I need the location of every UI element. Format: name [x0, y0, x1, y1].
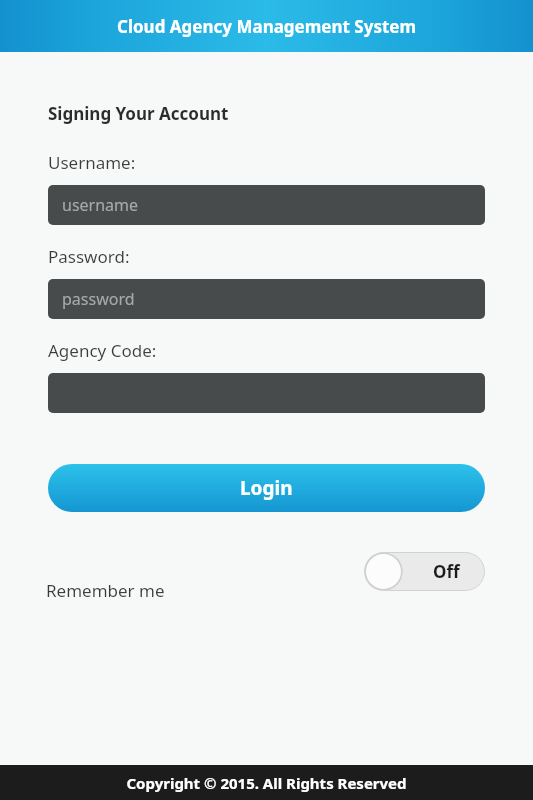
staticText: username [62, 194, 139, 216]
button[interactable]: password [48, 279, 485, 319]
button[interactable]: Remember me toggle, Off [364, 552, 485, 591]
staticText: Agency Code: [48, 339, 157, 362]
staticText: password [62, 288, 135, 310]
button[interactable]: Login [48, 464, 485, 512]
staticText: Username: [48, 151, 136, 174]
staticText: Cloud Agency Management System [117, 15, 417, 38]
staticText: Login [240, 475, 293, 501]
button[interactable] [48, 373, 485, 413]
staticText: Password: [48, 245, 130, 268]
button[interactable]: username [48, 185, 485, 225]
staticText: Off [433, 560, 460, 583]
staticText: Signing Your Account [48, 102, 229, 125]
staticText: Copyright © 2015. All Rights Reserved [126, 773, 407, 793]
staticText: Remember me [46, 579, 165, 602]
